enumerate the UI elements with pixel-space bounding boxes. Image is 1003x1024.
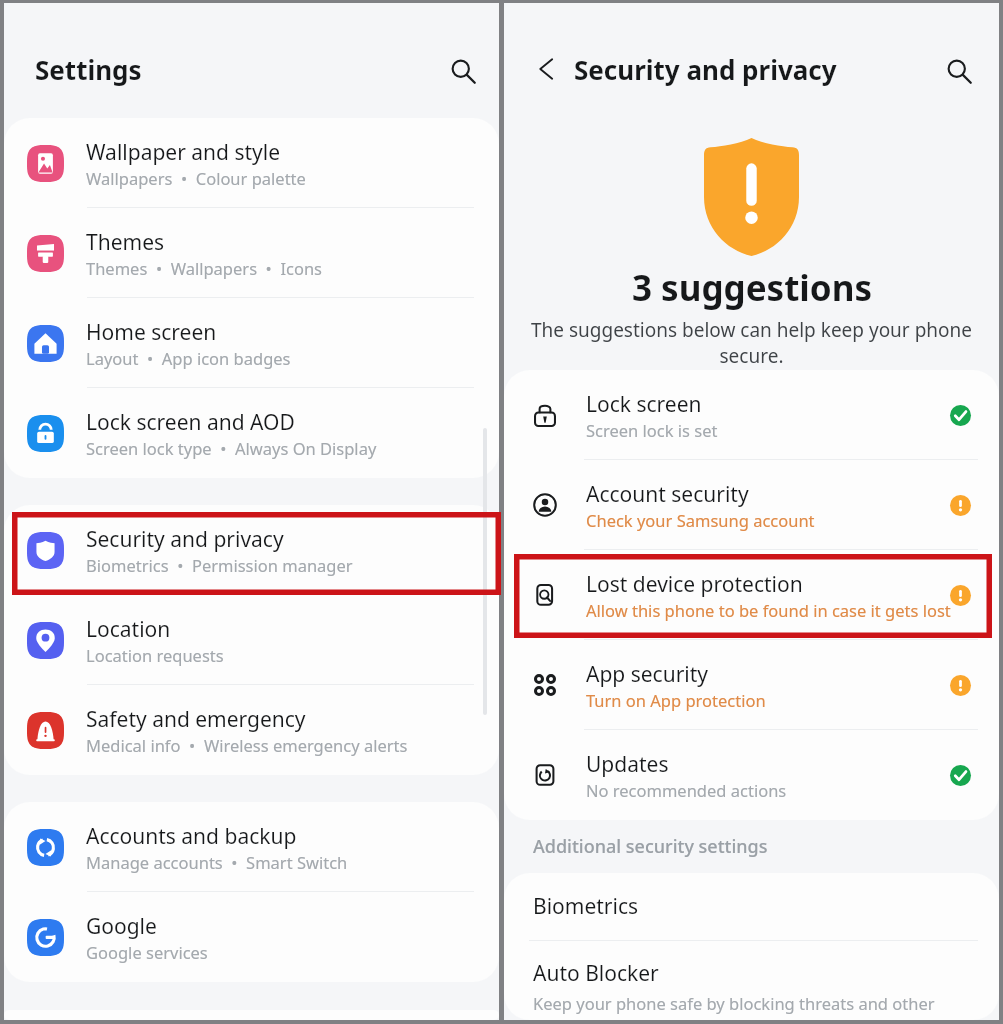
button[interactable]: Accounts and backup (4, 802, 499, 892)
staticText: Screen lock is set (586, 419, 718, 441)
button[interactable]: Auto Blocker (504, 941, 999, 1020)
button[interactable]: Security and privacy (4, 505, 499, 595)
staticText: Themes (86, 228, 165, 257)
staticText: Google (86, 912, 157, 941)
button[interactable]: Lost device protection (504, 550, 999, 640)
staticText: Location requests (86, 644, 224, 666)
button[interactable]: Location (4, 595, 499, 685)
button[interactable]: Themes (4, 208, 499, 298)
staticText: Wallpapers • Colour palette (86, 167, 306, 189)
staticText: 3 suggestions (632, 264, 872, 312)
staticText: Home screen (86, 318, 217, 347)
button[interactable]: Google (4, 892, 499, 982)
staticText: Allow this phone to be found in case it … (586, 599, 951, 621)
staticText: Lock screen and AOD (86, 408, 295, 437)
button[interactable]: Account security (504, 460, 999, 550)
button[interactable]: Wallpaper and style (4, 118, 499, 208)
staticText: Biometrics (533, 892, 639, 921)
staticText: Manage accounts • Smart Switch (86, 851, 348, 873)
staticText: The suggestions below can help keep your… (526, 317, 977, 369)
button[interactable]: Biometrics (504, 873, 999, 940)
staticText: Check your Samsung account (586, 509, 815, 531)
button[interactable]: Lock screen (504, 370, 999, 460)
button[interactable]: Updates (504, 730, 999, 820)
staticText: Updates (586, 750, 669, 779)
staticText: Settings (35, 52, 142, 87)
button[interactable]: Home screen (4, 298, 499, 388)
staticText: No recommended actions (586, 779, 787, 801)
staticText: Security and privacy (86, 525, 284, 554)
staticText: Auto Blocker (533, 959, 659, 988)
staticText: Biometrics • Permission manager (86, 554, 353, 576)
staticText: Security and privacy (574, 52, 837, 87)
staticText: Themes • Wallpapers • Icons (86, 257, 322, 279)
staticText: Account security (586, 480, 749, 509)
staticText: App security (586, 660, 709, 689)
button[interactable]: Back (528, 51, 564, 87)
staticText: Turn on App protection (586, 689, 766, 711)
staticText: Safety and emergency (86, 705, 306, 734)
button[interactable]: Lock screen and AOD (4, 388, 499, 478)
staticText: Location (86, 615, 171, 644)
staticText: Medical info • Wireless emergency alerts (86, 734, 408, 756)
staticText: Google services (86, 941, 208, 963)
staticText: Screen lock type • Always On Display (86, 437, 377, 459)
staticText: Accounts and backup (86, 822, 297, 851)
button[interactable]: Search (447, 55, 479, 87)
staticText: Layout • App icon badges (86, 347, 291, 369)
staticText: Keep your phone safe by blocking threats… (533, 992, 999, 1020)
staticText: Additional security settings (533, 834, 768, 859)
button[interactable]: Safety and emergency (4, 685, 499, 775)
staticText: Lost device protection (586, 570, 803, 599)
button[interactable]: Search (943, 55, 975, 87)
staticText: Lock screen (586, 390, 702, 419)
button[interactable]: App security (504, 640, 999, 730)
staticText: Wallpaper and style (86, 138, 281, 167)
